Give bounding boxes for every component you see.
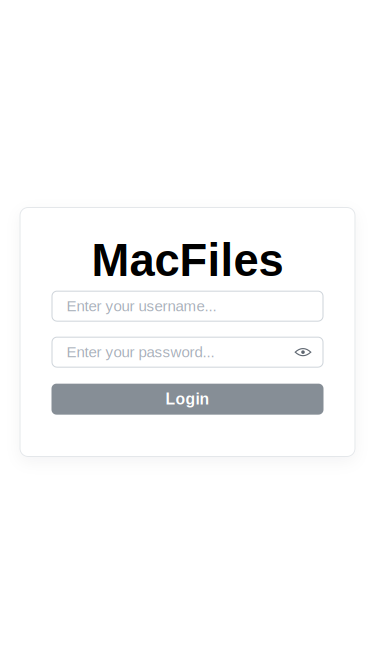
- button[interactable]: Enter your password...: [51, 337, 323, 368]
- staticText: Login: [165, 390, 209, 408]
- button[interactable]: Enter your username...: [51, 291, 323, 322]
- button[interactable]: Login: [51, 384, 323, 415]
- staticText: Enter your username...: [66, 298, 216, 314]
- staticText: Enter your password...: [66, 344, 214, 360]
- staticText: MacFiles: [91, 235, 283, 286]
